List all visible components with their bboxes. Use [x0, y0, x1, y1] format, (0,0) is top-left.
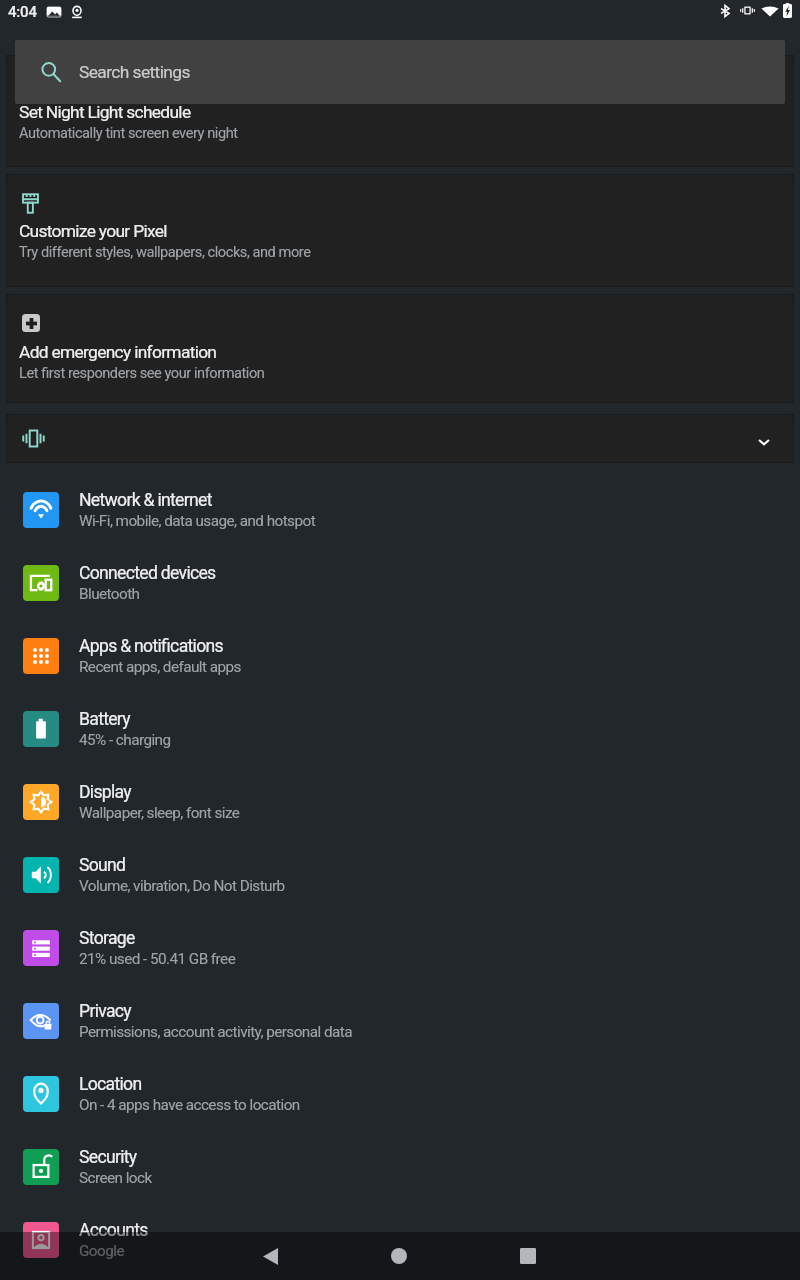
- staticText: Google: [79, 1242, 124, 1260]
- staticText: Apps & notifications: [79, 636, 223, 657]
- staticText: Volume, vibration, Do Not Disturb: [79, 877, 285, 895]
- staticText: Battery: [79, 709, 130, 730]
- button[interactable]: Network & internet: [0, 473, 800, 546]
- button[interactable]: Set Night Light schedule: [7, 56, 793, 166]
- staticText: Wallpaper, sleep, font size: [79, 804, 240, 822]
- button[interactable]: Battery: [0, 692, 800, 765]
- button[interactable]: Display: [0, 765, 800, 838]
- staticText: Sound: [79, 855, 126, 876]
- staticText: 4:04: [8, 3, 37, 21]
- staticText: 45% - charging: [79, 731, 171, 749]
- button[interactable]: Sound: [0, 838, 800, 911]
- staticText: Connected devices: [79, 563, 216, 584]
- staticText: Search settings: [79, 62, 190, 82]
- button[interactable]: Privacy: [0, 984, 800, 1057]
- button[interactable]: Search settings: [15, 40, 785, 104]
- button[interactable]: Recents: [504, 1232, 552, 1280]
- button[interactable]: Back: [246, 1232, 294, 1280]
- staticText: Wi-Fi, mobile, data usage, and hotspot: [79, 512, 316, 530]
- button[interactable]: Home: [375, 1232, 423, 1280]
- staticText: Network & internet: [79, 490, 212, 511]
- button[interactable]: Expand: [7, 415, 793, 462]
- staticText: 21% used - 50.41 GB free: [79, 950, 236, 968]
- button[interactable]: Add emergency information: [7, 295, 793, 402]
- staticText: Privacy: [79, 1001, 131, 1022]
- staticText: Let first responders see your informatio…: [19, 364, 265, 381]
- staticText: Accounts: [79, 1220, 148, 1241]
- button[interactable]: Customize your Pixel: [7, 175, 793, 286]
- staticText: Location: [79, 1074, 142, 1095]
- staticText: On - 4 apps have access to location: [79, 1096, 300, 1114]
- button[interactable]: Expand: [748, 426, 780, 458]
- button[interactable]: Apps & notifications: [0, 619, 800, 692]
- button[interactable]: Storage: [0, 911, 800, 984]
- staticText: Set Night Light schedule: [19, 102, 191, 122]
- staticText: Permissions, account activity, personal …: [79, 1023, 352, 1041]
- staticText: Bluetooth: [79, 585, 140, 603]
- staticText: Recent apps, default apps: [79, 658, 241, 676]
- staticText: Security: [79, 1147, 137, 1168]
- staticText: Screen lock: [79, 1169, 152, 1187]
- staticText: Automatically tint screen every night: [19, 124, 238, 141]
- staticText: Try different styles, wallpapers, clocks…: [19, 243, 311, 260]
- staticText: Display: [79, 782, 131, 803]
- button[interactable]: Connected devices: [0, 546, 800, 619]
- staticText: Add emergency information: [19, 342, 217, 362]
- button[interactable]: Security: [0, 1130, 800, 1203]
- button[interactable]: Location: [0, 1057, 800, 1130]
- button[interactable]: Accounts: [0, 1203, 800, 1276]
- staticText: Customize your Pixel: [19, 221, 167, 241]
- staticText: Storage: [79, 928, 135, 949]
